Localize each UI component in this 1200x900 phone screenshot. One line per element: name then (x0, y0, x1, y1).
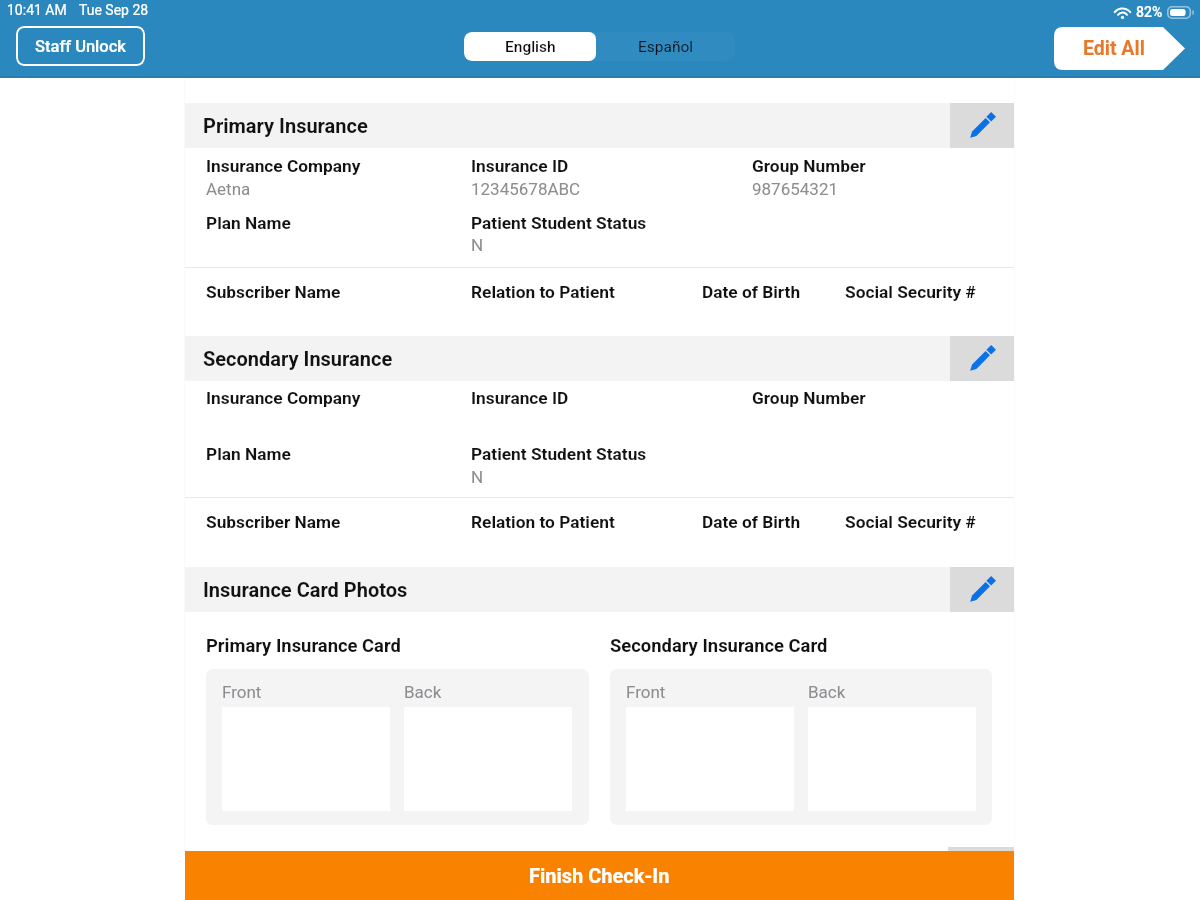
staticText: Tue Sep 28 (79, 2, 149, 18)
staticText: Primary Insurance Card (206, 635, 401, 657)
staticText: 12345678ABC (471, 179, 581, 199)
staticText: Subscriber Name (206, 512, 341, 532)
button[interactable]: Edit Secondary Insurance (950, 336, 1014, 381)
staticText: Aetna (206, 179, 251, 199)
staticText: Secondary Insurance (203, 347, 393, 370)
button[interactable]: Edit Insurance Card Photos (950, 567, 1014, 612)
staticText: Insurance Company (206, 156, 361, 176)
button[interactable]: Staff Unlock (16, 26, 145, 66)
staticText: Front (626, 682, 666, 702)
staticText: Edit All (1083, 37, 1145, 60)
staticText: Group Number (752, 156, 866, 176)
staticText: Plan Name (206, 213, 291, 233)
staticText: 987654321 (752, 179, 838, 199)
staticText: Social Security # (845, 512, 976, 532)
staticText: Relation to Patient (471, 282, 615, 302)
button[interactable]: English (464, 32, 596, 61)
button[interactable]: Finish Check-In (185, 851, 1014, 900)
staticText: 10:41 AM (7, 2, 67, 18)
staticText: English (505, 38, 556, 56)
button[interactable]: Edit All (1054, 27, 1185, 70)
staticText: Finish Check-In (529, 864, 670, 887)
staticText: 82% (1136, 4, 1163, 20)
staticText: Back (808, 682, 846, 702)
staticText: Patient Student Status (471, 444, 647, 464)
staticText: N (471, 235, 484, 255)
staticText: Insurance ID (471, 156, 569, 176)
staticText: Front (222, 682, 262, 702)
staticText: Español (638, 38, 694, 56)
staticText: Date of Birth (702, 282, 801, 302)
staticText: Staff Unlock (35, 37, 126, 56)
staticText: Insurance Company (206, 388, 361, 408)
staticText: Insurance Card Photos (203, 578, 408, 601)
staticText: Date of Birth (702, 512, 801, 532)
staticText: Group Number (752, 388, 866, 408)
staticText: Back (404, 682, 442, 702)
staticText: Secondary Insurance Card (610, 635, 828, 657)
staticText: Relation to Patient (471, 512, 615, 532)
staticText: Insurance ID (471, 388, 569, 408)
staticText: Subscriber Name (206, 282, 341, 302)
staticText: N (471, 467, 484, 487)
staticText: Social Security # (845, 282, 976, 302)
staticText: Primary Insurance (203, 114, 368, 137)
button[interactable]: Edit Primary Insurance (950, 103, 1014, 148)
button[interactable]: Español (596, 32, 735, 61)
staticText: Plan Name (206, 444, 291, 464)
staticText: Patient Student Status (471, 213, 647, 233)
